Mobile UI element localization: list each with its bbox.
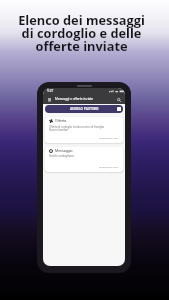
staticText: Elenco dei messaggi di cordoglio e delle… xyxy=(0,11,166,55)
staticText: Offerta xyxy=(55,119,67,123)
button[interactable]: Search xyxy=(115,96,122,103)
staticText: Messaggi e offerte inviate xyxy=(55,97,94,101)
staticText: Messaggio xyxy=(55,149,73,153)
staticText: Offerta di cordoglio inviata a nome di F… xyxy=(49,125,105,132)
staticText: ANGELO PASTORE xyxy=(70,107,99,111)
staticText: 20/02/2023 10:24 xyxy=(99,166,119,169)
staticText: 20/02/2023 10:31 xyxy=(99,137,119,140)
staticText: Sentite condoglianze xyxy=(49,154,74,157)
button[interactable]: ANGELO PASTORE xyxy=(45,105,123,113)
button[interactable]: Offerta xyxy=(45,117,123,143)
staticText: 9:27 xyxy=(47,89,54,93)
button[interactable]: Messaggio xyxy=(45,147,123,172)
button[interactable]: Menu xyxy=(46,96,53,103)
